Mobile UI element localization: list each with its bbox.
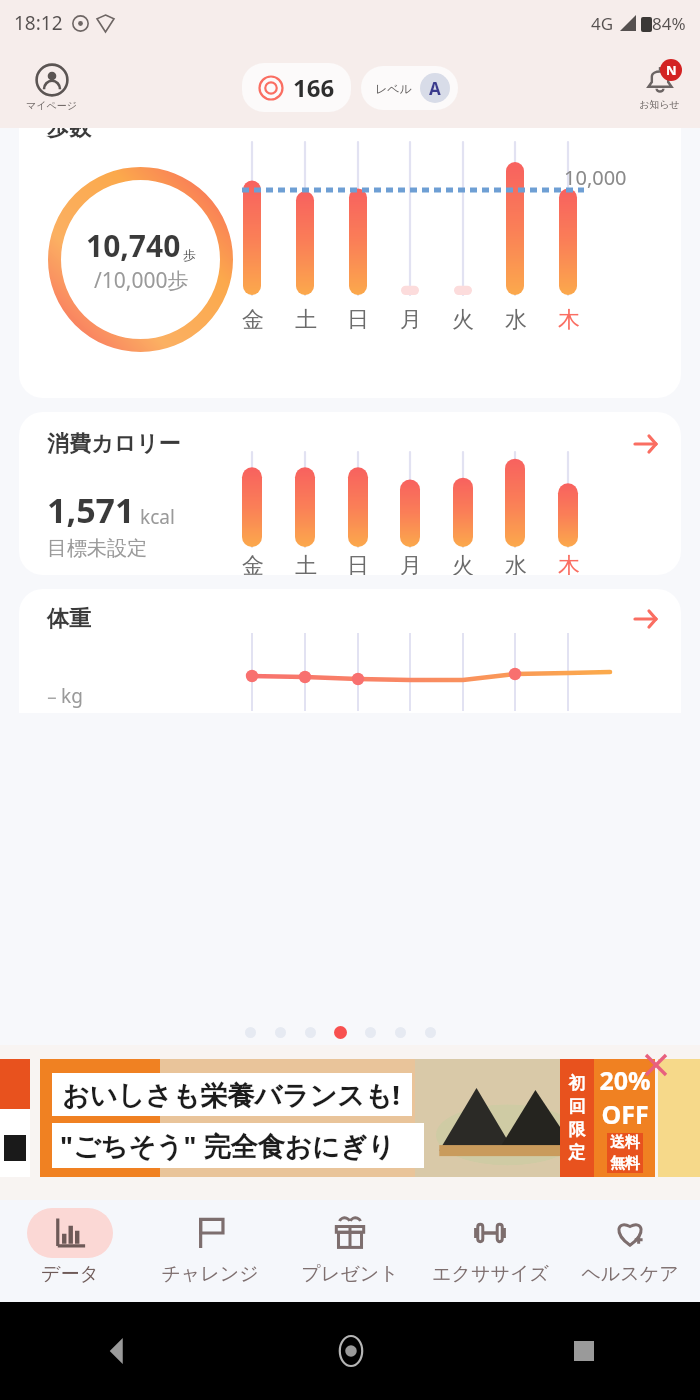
staticText: 166 [293, 71, 335, 104]
staticText: 火 [452, 552, 474, 575]
staticText: 送料 無料 [610, 1133, 640, 1173]
button[interactable]: 体重 [19, 589, 681, 713]
button[interactable]: レベル [361, 66, 458, 110]
staticText: 金 [242, 306, 264, 334]
button[interactable]: データ [0, 1200, 140, 1302]
staticText: "ごちそう" 完全食おにぎり [60, 1127, 395, 1164]
staticText: A [429, 77, 441, 100]
other: プレゼント [332, 1215, 368, 1251]
other: チャレンジ [192, 1215, 228, 1251]
staticText: 歩 [183, 247, 196, 263]
staticText: 体重 [47, 605, 91, 633]
staticText: kcal [140, 504, 175, 530]
button[interactable]: 歩数 [19, 128, 681, 398]
staticText: おいしさも栄養バランスも! [62, 1076, 400, 1113]
staticText: 84% [652, 12, 686, 35]
staticText: お知らせ [639, 98, 680, 111]
staticText: プレゼント [301, 1262, 399, 1286]
button[interactable]: 166 [242, 63, 351, 112]
other: Back [104, 1338, 130, 1364]
staticText: 18:12 [14, 10, 63, 36]
button[interactable]: お知らせ [635, 59, 684, 115]
staticText: マイページ [26, 99, 77, 112]
button[interactable]: おいしさも栄養バランスも! [40, 1059, 655, 1177]
button[interactable]: プレゼント [280, 1200, 420, 1302]
staticText: 火 [452, 306, 474, 334]
staticText: データ [41, 1262, 99, 1286]
staticText: 木 [558, 306, 580, 334]
staticText: 月 [400, 306, 422, 334]
staticText: 木 [558, 552, 580, 575]
button[interactable]: 広告を閉じる [636, 1045, 676, 1085]
staticText: 土 [295, 306, 317, 334]
staticText: 金 [242, 552, 264, 575]
staticText: 10,740 [86, 225, 181, 266]
staticText: 20% OFF [599, 1063, 651, 1131]
other: ヘルスケア [612, 1215, 648, 1251]
staticText: 水 [505, 552, 527, 575]
staticText: 日 [347, 552, 369, 575]
other: エクササイズ [472, 1215, 508, 1251]
staticText: 土 [295, 552, 317, 575]
other: データ [52, 1215, 88, 1251]
staticText: レベル [375, 81, 412, 96]
staticText: 目標未設定 [47, 536, 147, 561]
staticText: 4G [591, 12, 614, 35]
staticText: − [47, 686, 57, 709]
staticText: 10,000 [564, 164, 627, 191]
staticText: 初回限定 [567, 1073, 587, 1163]
staticText: ヘルスケア [581, 1262, 679, 1286]
staticText: kg [61, 683, 83, 709]
button[interactable]: 消費カロリー [19, 412, 681, 575]
button[interactable]: 詳細へ [633, 606, 659, 632]
button[interactable]: マイページ [22, 59, 81, 116]
button[interactable]: ヘルスケア [560, 1200, 700, 1302]
staticText: N [666, 61, 677, 79]
staticText: 歩数 [47, 128, 91, 142]
staticText: エクササイズ [432, 1262, 549, 1286]
staticText: 日 [347, 306, 369, 334]
button[interactable]: チャレンジ [140, 1200, 280, 1302]
staticText: 1,571 [47, 487, 135, 533]
staticText: 消費カロリー [47, 430, 181, 458]
other: Home [334, 1334, 368, 1368]
staticText: 水 [505, 306, 527, 334]
button[interactable]: エクササイズ [420, 1200, 560, 1302]
staticText: チャレンジ [161, 1262, 259, 1286]
staticText: /10,000歩 [94, 266, 189, 295]
button[interactable]: 詳細へ [633, 431, 659, 457]
staticText: 月 [400, 552, 422, 575]
